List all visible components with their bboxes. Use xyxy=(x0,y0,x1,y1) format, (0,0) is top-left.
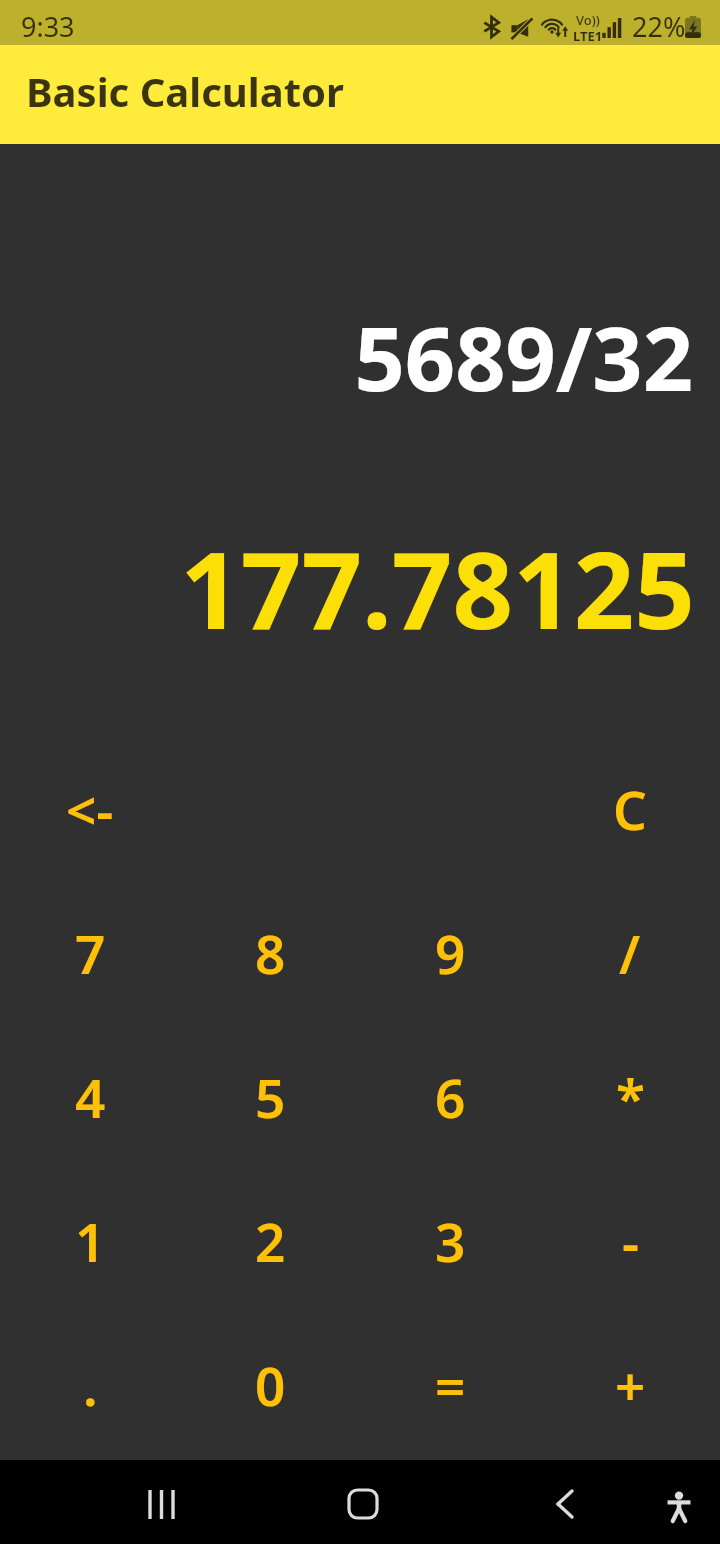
button[interactable]: C xyxy=(540,737,720,881)
button[interactable]: Back xyxy=(525,1464,605,1544)
button[interactable]: Accessibility xyxy=(639,1466,719,1544)
button[interactable]: 5 xyxy=(180,1025,360,1169)
staticText: Vo)) xyxy=(576,11,600,29)
staticText: 8 xyxy=(255,917,286,989)
staticText: Basic Calculator xyxy=(26,64,344,118)
button[interactable]: 1 xyxy=(0,1169,180,1313)
staticText: 5 xyxy=(255,1061,286,1133)
staticText: - xyxy=(622,1205,639,1277)
staticText: 0 xyxy=(255,1349,286,1421)
staticText: * xyxy=(616,1061,645,1133)
staticText: 5689/32 xyxy=(0,297,693,417)
button[interactable]: 3 xyxy=(360,1169,540,1313)
staticText: = xyxy=(435,1349,466,1421)
button[interactable]: 6 xyxy=(360,1025,540,1169)
staticText: 6 xyxy=(435,1061,466,1133)
staticText: 7 xyxy=(75,917,106,989)
button[interactable]: 8 xyxy=(180,881,360,1025)
staticText: . xyxy=(83,1349,98,1421)
button[interactable]: 4 xyxy=(0,1025,180,1169)
staticText: 177.78125 xyxy=(0,516,695,660)
staticText: 9 xyxy=(435,917,466,989)
staticText: 1 xyxy=(75,1205,106,1277)
staticText: <- xyxy=(66,773,114,845)
button[interactable]: . xyxy=(0,1313,180,1457)
button[interactable]: - xyxy=(540,1169,720,1313)
button[interactable]: Home xyxy=(323,1464,403,1544)
staticText: 9:33 xyxy=(21,8,75,45)
button[interactable]: Recents xyxy=(122,1464,202,1544)
button[interactable]: <- xyxy=(0,737,180,881)
button[interactable]: 7 xyxy=(0,881,180,1025)
button[interactable]: 9 xyxy=(360,881,540,1025)
button[interactable]: 0 xyxy=(180,1313,360,1457)
button[interactable]: * xyxy=(540,1025,720,1169)
button[interactable]: / xyxy=(540,881,720,1025)
staticText: + xyxy=(615,1349,646,1421)
button[interactable]: + xyxy=(540,1313,720,1457)
button[interactable]: 2 xyxy=(180,1169,360,1313)
staticText: C xyxy=(613,773,647,845)
staticText: / xyxy=(619,917,641,989)
staticText: 3 xyxy=(435,1205,466,1277)
staticText: 4 xyxy=(75,1061,106,1133)
staticText: 2 xyxy=(255,1205,286,1277)
staticText: 22% xyxy=(632,8,686,45)
button[interactable]: = xyxy=(360,1313,540,1457)
staticText: LTE1 xyxy=(573,27,603,45)
